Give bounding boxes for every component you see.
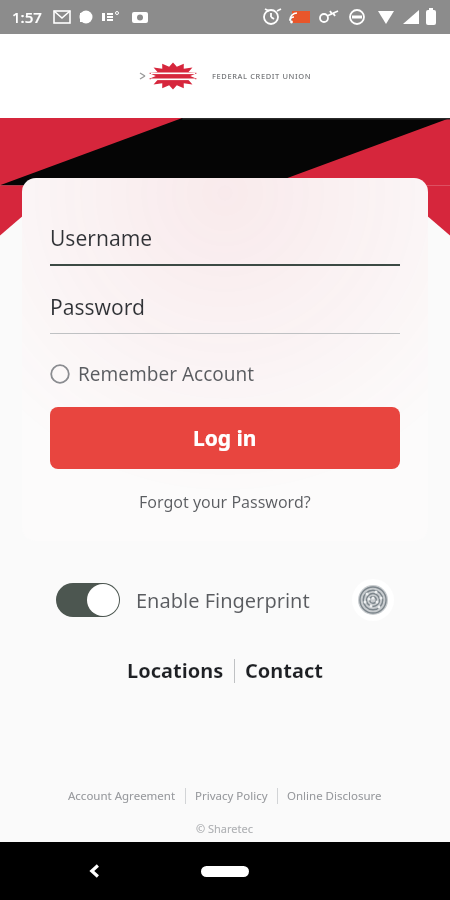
button[interactable]: Log in <box>50 407 400 469</box>
staticText: Remember Account <box>78 361 255 387</box>
staticText: © Sharetec <box>196 821 254 836</box>
button[interactable]: Account Agreement <box>59 785 185 807</box>
button[interactable]: Remember Account <box>50 361 400 387</box>
staticText: Privacy Policy <box>195 788 268 804</box>
staticText: Log in <box>193 424 257 453</box>
staticText: Password <box>50 293 145 322</box>
button[interactable]: Privacy Policy <box>186 785 277 807</box>
staticText: Online Disclosure <box>287 788 382 804</box>
button[interactable]: Locations <box>117 653 234 688</box>
button[interactable]: Back <box>78 854 112 888</box>
staticText: Enable Fingerprint <box>136 587 310 614</box>
staticText: Forgot your Password? <box>139 491 311 513</box>
button[interactable]: Contact <box>235 653 333 688</box>
staticText: Account Agreement <box>68 788 176 804</box>
staticText: FEDERAL CREDIT UNION <box>212 71 312 81</box>
staticText: Contact <box>245 657 323 684</box>
staticText: 1:57 <box>12 7 42 27</box>
button[interactable]: Enable Fingerprint toggle <box>56 583 120 617</box>
button[interactable]: Password <box>50 293 400 334</box>
button[interactable]: Home <box>197 863 253 879</box>
button[interactable]: Fingerprint login <box>352 579 394 621</box>
button[interactable]: Online Disclosure <box>278 785 391 807</box>
staticText: Username <box>50 224 153 253</box>
button[interactable]: Forgot your Password? <box>50 491 400 513</box>
button[interactable]: Username <box>50 224 400 266</box>
staticText: Locations <box>127 657 224 684</box>
